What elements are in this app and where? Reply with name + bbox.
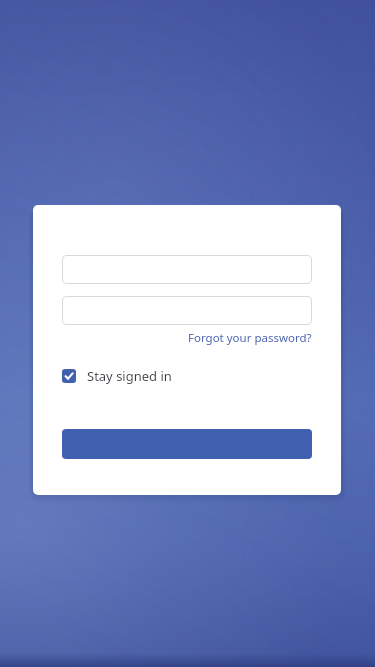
button[interactable]: Forgot your password? [188, 330, 312, 346]
staticText: Forgot your password? [188, 330, 312, 346]
button[interactable]: Stay signed in [62, 367, 172, 385]
button[interactable]: Log in [62, 429, 312, 459]
staticText: Stay signed in [87, 367, 172, 385]
button[interactable]: Password [62, 296, 312, 325]
button[interactable]: Email [62, 255, 312, 284]
